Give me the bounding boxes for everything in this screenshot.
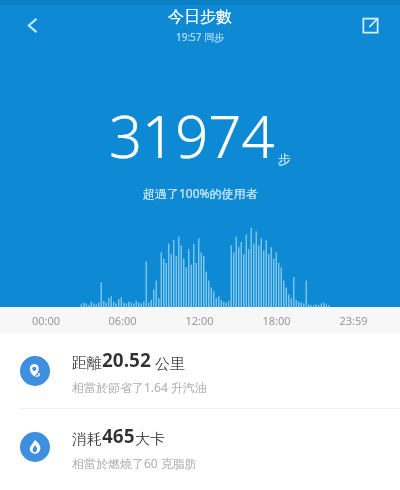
staticText: 公里	[151, 353, 185, 373]
staticText: 今日步數	[168, 7, 232, 27]
staticText: 18:00	[238, 313, 315, 328]
button[interactable]: 消耗	[0, 409, 400, 484]
staticText: 相當於節省了1.64 升汽油	[72, 379, 207, 395]
staticText: 06:00	[84, 313, 161, 328]
staticText: 距離	[72, 354, 102, 373]
staticText: 23:59	[315, 313, 392, 328]
staticText: 19:57 同步	[176, 30, 225, 44]
staticText: 20.52	[102, 347, 151, 373]
staticText: 超過了100%的使用者	[143, 185, 258, 201]
staticText: 465	[102, 423, 135, 449]
button[interactable]: Back	[10, 3, 54, 47]
button[interactable]: Share	[348, 3, 392, 47]
staticText: 大卡	[135, 430, 165, 449]
staticText: 消耗	[72, 430, 102, 449]
staticText: 00:00	[8, 313, 84, 328]
staticText: 步	[278, 151, 291, 167]
staticText: 31974	[109, 96, 275, 175]
button[interactable]: 距離	[0, 333, 400, 408]
staticText: 相當於燃燒了60 克脂肪	[72, 455, 197, 471]
staticText: 12:00	[161, 313, 238, 328]
